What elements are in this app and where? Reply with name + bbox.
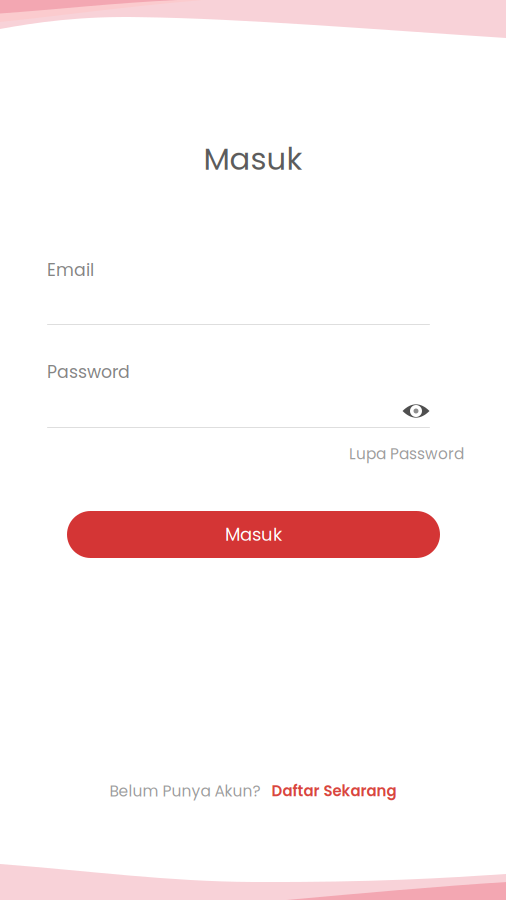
staticText: Masuk bbox=[225, 522, 282, 547]
staticText: Masuk bbox=[203, 137, 302, 180]
button[interactable]: Daftar Sekarang bbox=[271, 780, 396, 801]
button[interactable]: Masuk bbox=[67, 511, 440, 558]
staticText: Daftar Sekarang bbox=[271, 780, 396, 801]
staticText: Belum Punya Akun? bbox=[109, 780, 260, 802]
staticText: Password bbox=[47, 360, 130, 384]
button[interactable]: Show password bbox=[398, 397, 434, 425]
button[interactable]: Lupa Password bbox=[164, 443, 464, 465]
staticText: Lupa Password bbox=[349, 443, 464, 465]
staticText: Email bbox=[47, 258, 94, 282]
